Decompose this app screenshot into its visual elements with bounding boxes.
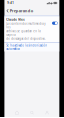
button[interactable]: Home <box>9 110 24 115</box>
staticText: archivos se guardan en la carpeta <box>6 29 40 37</box>
button[interactable]: Back <box>6 7 33 15</box>
staticText: Los contenidos multimedia y los <box>6 22 45 29</box>
button[interactable]: Profile <box>39 110 55 115</box>
staticText: Claude Files <box>6 18 24 21</box>
staticText: de descargas del dispositivo. <box>6 37 46 41</box>
button[interactable]: Se ha activado la sincronización automát… <box>4 43 60 51</box>
button[interactable]: Claude Files <box>52 18 58 25</box>
staticText: Preparando <box>10 8 33 13</box>
staticText: 9:41 <box>7 1 14 5</box>
staticText: Se ha activado la sincronización automát… <box>6 44 47 51</box>
